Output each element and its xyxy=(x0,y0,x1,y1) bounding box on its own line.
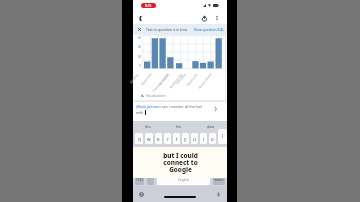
staticText: 40 xyxy=(138,45,141,49)
staticText: the xyxy=(176,124,182,129)
button[interactable]: w xyxy=(145,133,153,144)
button[interactable]: return xyxy=(213,174,225,185)
button[interactable]: d xyxy=(159,148,167,159)
button[interactable]: Share xyxy=(198,12,210,24)
button[interactable]: y xyxy=(182,133,189,144)
button[interactable]: e xyxy=(155,133,162,144)
button[interactable]: j xyxy=(196,148,203,159)
button[interactable]: Dismiss xyxy=(136,26,143,33)
staticText: 60 xyxy=(138,36,141,40)
button[interactable]: g xyxy=(178,148,185,159)
button[interactable]: More options xyxy=(211,12,223,24)
button[interactable]: r xyxy=(164,133,171,144)
staticText: can i monitor all the fuel orders xyxy=(161,104,211,109)
button[interactable]: Change keyboard language xyxy=(138,191,145,198)
button[interactable]: i xyxy=(200,133,207,144)
button[interactable]: u xyxy=(191,133,198,144)
button[interactable]: x xyxy=(158,161,166,172)
button[interactable]: Back xyxy=(136,14,145,23)
staticText: Marine Diesel xyxy=(197,73,213,90)
staticText: q xyxy=(138,136,141,142)
staticText: b xyxy=(189,164,192,170)
staticText: l xyxy=(222,133,224,140)
staticText: w xyxy=(147,136,151,142)
button[interactable]: this xyxy=(141,122,155,131)
staticText: Premium Unlead xyxy=(152,73,169,93)
button[interactable]: c xyxy=(168,161,176,172)
staticText: r xyxy=(167,136,169,142)
staticText: i xyxy=(203,136,205,142)
staticText: u xyxy=(193,136,196,142)
staticText: View question SQL xyxy=(194,27,224,32)
button[interactable]: Key xyxy=(147,174,154,185)
staticText: but I could connect to Google xyxy=(163,151,198,174)
staticText: ?123 xyxy=(136,178,143,182)
staticText: t xyxy=(176,136,178,142)
button[interactable]: h xyxy=(187,148,194,159)
button[interactable]: p xyxy=(218,129,227,144)
button[interactable]: the xyxy=(172,122,186,131)
button[interactable]: English xyxy=(157,174,210,185)
staticText: h xyxy=(189,151,192,157)
button[interactable]: b xyxy=(187,161,194,172)
staticText: Visualization xyxy=(146,93,166,97)
button[interactable]: v xyxy=(178,161,185,172)
staticText: Diesel Fuel xyxy=(140,73,152,87)
staticText: English xyxy=(178,178,189,182)
button[interactable]: Screen recording xyxy=(141,3,156,8)
button[interactable]: p xyxy=(218,133,225,144)
staticText: 20 xyxy=(138,55,141,59)
staticText: c xyxy=(171,164,174,170)
staticText: with xyxy=(136,110,144,115)
staticText: g xyxy=(180,151,183,157)
staticText: Kerosene xyxy=(175,73,186,85)
button[interactable]: q xyxy=(135,133,143,144)
staticText: return xyxy=(214,178,224,182)
staticText: this xyxy=(145,124,151,129)
staticText: Jet Fuel A1 xyxy=(158,73,170,87)
staticText: p xyxy=(220,136,223,142)
staticText: o xyxy=(211,136,214,142)
button[interactable]: f xyxy=(169,148,176,159)
button[interactable]: data xyxy=(203,122,219,131)
staticText: e xyxy=(157,136,160,142)
staticText: d xyxy=(162,151,165,157)
button[interactable]: t xyxy=(173,133,180,144)
staticText: Heating Oil xyxy=(185,73,198,87)
button[interactable]: n xyxy=(196,161,203,172)
button[interactable]: Dismiss xyxy=(133,24,227,35)
staticText: v xyxy=(180,164,183,170)
staticText: Biodiesel B20 xyxy=(168,73,184,90)
button[interactable]: ?123 xyxy=(135,174,144,185)
staticText: Text-to-question is in beta xyxy=(146,27,188,32)
staticText: Gasoline xyxy=(129,73,140,84)
button[interactable]: Send xyxy=(211,104,221,114)
button[interactable]: o xyxy=(209,133,216,144)
staticText: @bob_johnson xyxy=(136,104,161,109)
staticText: data xyxy=(207,124,215,129)
staticText: 0 xyxy=(139,64,141,68)
staticText: f xyxy=(172,151,174,157)
staticText: 0:15 xyxy=(145,4,152,8)
staticText: y xyxy=(184,136,187,142)
button[interactable]: Voice input xyxy=(215,191,222,198)
